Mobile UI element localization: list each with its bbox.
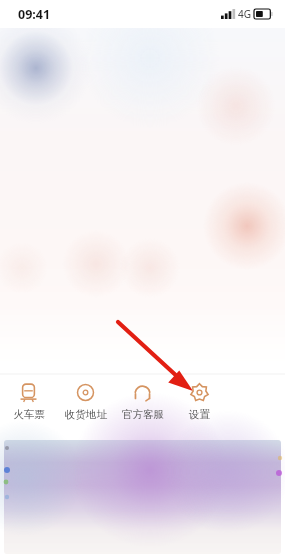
- staticText: 设置: [189, 408, 210, 421]
- staticText: 官方客服: [122, 408, 164, 421]
- button[interactable]: 收货地址: [57, 375, 114, 421]
- button[interactable]: 火车票: [0, 375, 57, 421]
- staticText: 火车票: [13, 408, 45, 421]
- button[interactable]: 设置: [171, 375, 228, 421]
- button[interactable]: 官方客服: [114, 375, 171, 421]
- staticText: 09:41: [18, 6, 51, 23]
- staticText: 4G: [238, 7, 251, 21]
- staticText: 收货地址: [65, 408, 107, 421]
